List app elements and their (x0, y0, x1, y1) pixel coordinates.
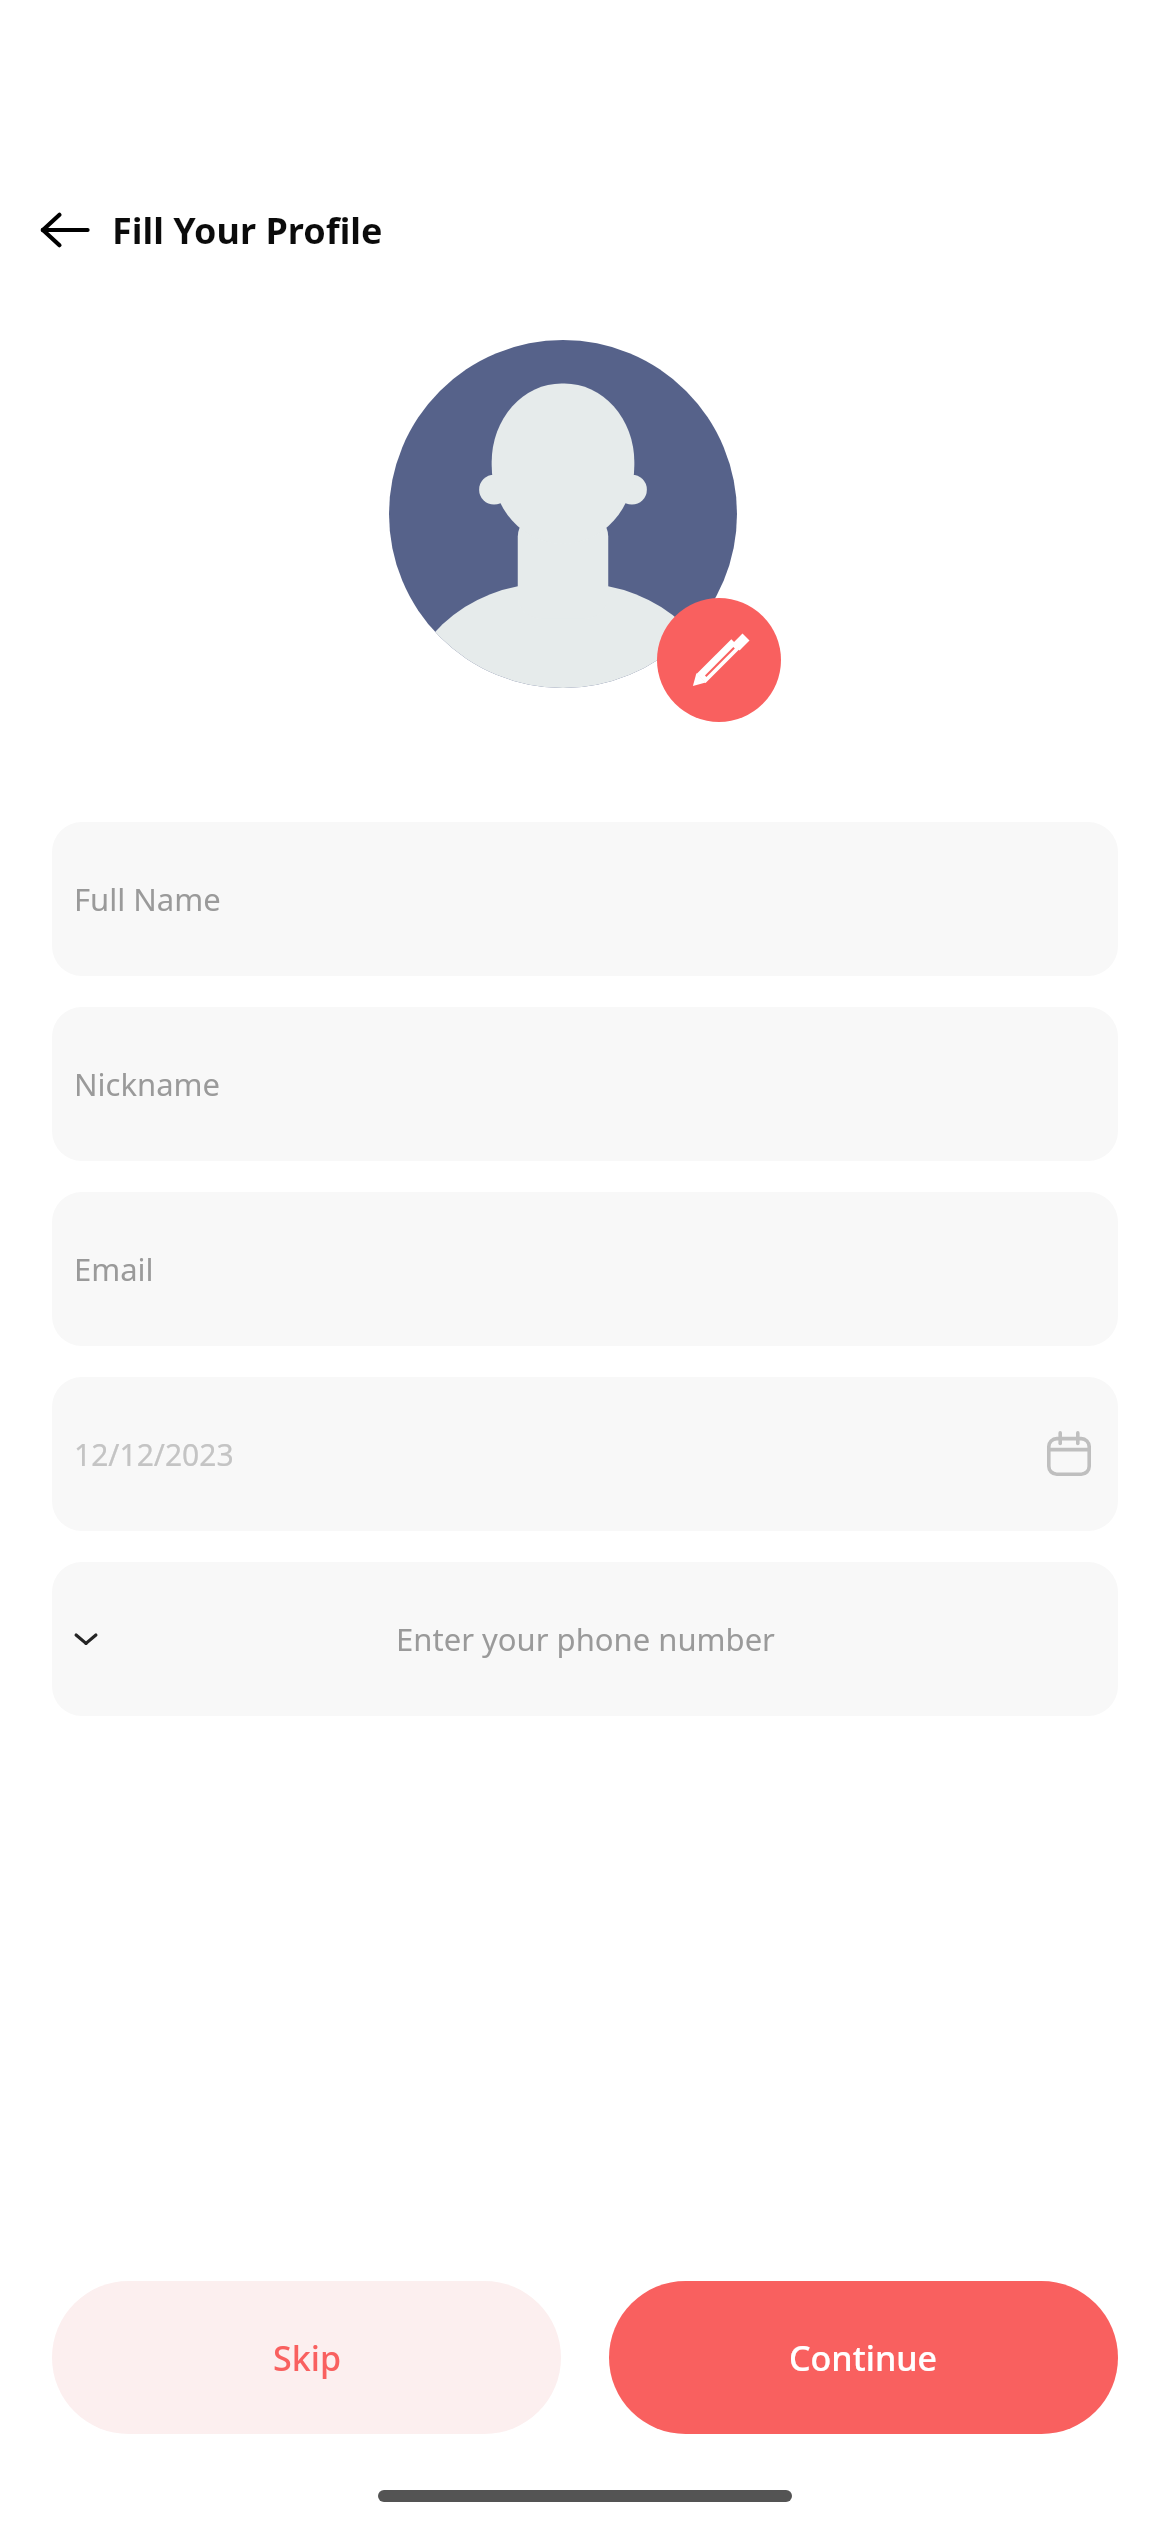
staticText: 12/12/2023 (74, 1434, 234, 1475)
staticText: Email (74, 1248, 154, 1290)
button[interactable]: Nickname (52, 1007, 1118, 1161)
button[interactable]: Full Name (52, 822, 1118, 976)
staticText: Enter your phone number (396, 1618, 775, 1660)
button[interactable]: Profile photo (389, 340, 737, 688)
button[interactable]: 12/12/2023 (52, 1377, 1118, 1531)
staticText: Continue (789, 2335, 938, 2381)
staticText: Fill Your Profile (112, 206, 383, 255)
staticText: Nickname (74, 1063, 221, 1105)
button[interactable]: Select country code (52, 1562, 1118, 1716)
button[interactable]: Email (52, 1192, 1118, 1346)
button[interactable]: Skip (52, 2281, 561, 2434)
button[interactable]: Back (34, 199, 96, 261)
button[interactable]: Continue (609, 2281, 1118, 2434)
button[interactable]: Edit photo (657, 598, 781, 722)
button[interactable]: Select country code (58, 1611, 114, 1667)
staticText: Full Name (74, 878, 221, 920)
staticText: Skip (273, 2335, 341, 2381)
button[interactable]: Pick date (1038, 1423, 1100, 1485)
